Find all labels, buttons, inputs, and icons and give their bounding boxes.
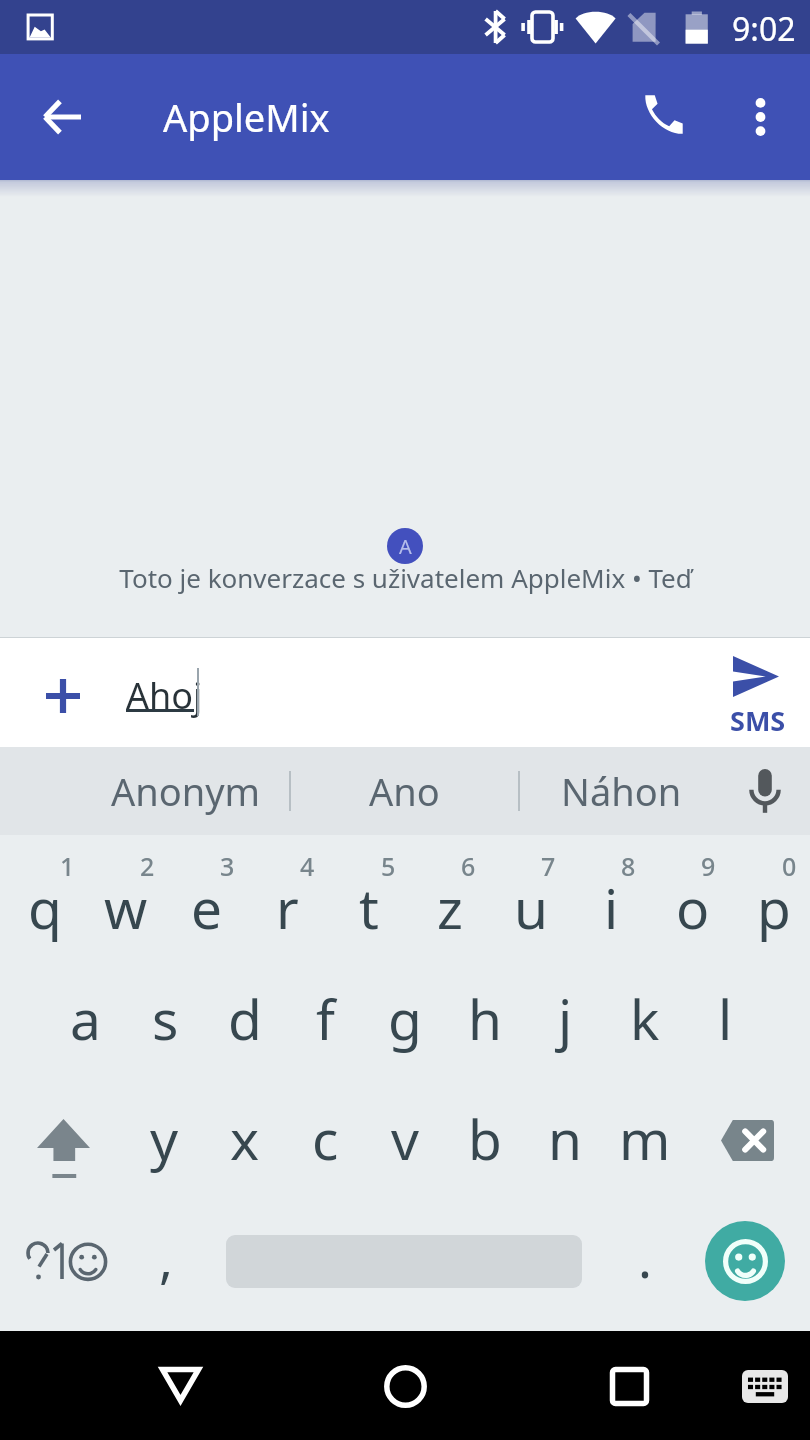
- staticText: Ano: [369, 765, 440, 817]
- staticText: 6: [461, 849, 476, 883]
- button[interactable]: g: [365, 955, 445, 1075]
- button[interactable]: Back: [135, 1341, 225, 1431]
- staticText: g: [388, 981, 422, 1056]
- staticText: j: [558, 981, 573, 1056]
- staticText: 9: [701, 849, 716, 883]
- button[interactable]: j: [525, 955, 605, 1075]
- staticText: p: [757, 870, 791, 945]
- button[interactable]: .: [582, 1195, 680, 1331]
- staticText: x: [230, 1101, 260, 1176]
- button[interactable]: Back: [23, 77, 103, 157]
- staticText: t: [359, 870, 379, 945]
- button[interactable]: c: [285, 1075, 365, 1195]
- button[interactable]: Ano: [290, 747, 518, 835]
- staticText: l: [718, 981, 733, 1056]
- button[interactable]: Náhon: [518, 747, 724, 835]
- button[interactable]: Shift: [0, 1075, 124, 1195]
- staticText: 7: [541, 849, 556, 883]
- staticText: k: [630, 981, 660, 1056]
- button[interactable]: Voice input: [724, 747, 810, 835]
- staticText: Ahoj: [126, 671, 203, 720]
- button[interactable]: k: [605, 955, 685, 1075]
- staticText: r: [276, 870, 299, 945]
- button[interactable]: f: [285, 955, 365, 1075]
- staticText: 8: [621, 849, 636, 883]
- button[interactable]: b: [445, 1075, 525, 1195]
- staticText: s: [152, 981, 179, 1056]
- staticText: b: [468, 1101, 502, 1176]
- staticText: m: [619, 1101, 671, 1176]
- button[interactable]: y: [124, 1075, 205, 1195]
- staticText: SMS: [730, 702, 786, 739]
- staticText: 5: [381, 849, 396, 883]
- button[interactable]: q: [0, 835, 81, 955]
- button[interactable]: e: [162, 835, 243, 955]
- staticText: 1: [60, 849, 75, 883]
- staticText: u: [514, 870, 548, 945]
- button[interactable]: Anonym: [81, 747, 290, 835]
- button[interactable]: ,: [128, 1195, 226, 1331]
- button[interactable]: i: [567, 835, 648, 955]
- staticText: AppleMix: [163, 91, 330, 143]
- staticText: d: [228, 981, 262, 1056]
- staticText: o: [676, 870, 710, 945]
- button[interactable]: r: [243, 835, 324, 955]
- staticText: 3: [220, 849, 235, 883]
- staticText: y: [150, 1101, 179, 1176]
- staticText: n: [548, 1101, 582, 1176]
- button[interactable]: z: [405, 835, 486, 955]
- button[interactable]: d: [205, 955, 285, 1075]
- button[interactable]: u: [486, 835, 567, 955]
- staticText: A: [399, 533, 412, 560]
- button[interactable]: Switch keyboard: [720, 1341, 810, 1431]
- button[interactable]: Home: [360, 1341, 450, 1431]
- staticText: c: [312, 1101, 339, 1176]
- button[interactable]: x: [205, 1075, 285, 1195]
- button[interactable]: SMS: [706, 642, 806, 743]
- staticText: Anonym: [111, 765, 261, 817]
- staticText: q: [28, 870, 62, 945]
- button[interactable]: Emoji: [680, 1195, 810, 1331]
- staticText: 9:02: [732, 7, 796, 51]
- button[interactable]: Recents: [584, 1341, 674, 1431]
- staticText: e: [191, 870, 223, 945]
- button[interactable]: Backspace: [685, 1075, 810, 1195]
- button[interactable]: p: [729, 835, 810, 955]
- staticText: 4: [300, 849, 315, 883]
- staticText: v: [391, 1101, 419, 1176]
- button[interactable]: Call: [619, 71, 705, 157]
- button[interactable]: Attach: [28, 658, 98, 728]
- staticText: 0: [782, 849, 797, 883]
- button[interactable]: o: [648, 835, 729, 955]
- staticText: Toto je konverzace s uživatelem AppleMix…: [119, 560, 692, 595]
- button[interactable]: t: [324, 835, 405, 955]
- staticText: 2: [140, 849, 155, 883]
- button[interactable]: More options: [714, 74, 800, 160]
- button[interactable]: s: [125, 955, 205, 1075]
- staticText: h: [468, 981, 502, 1056]
- button[interactable]: h: [445, 955, 525, 1075]
- staticText: f: [316, 981, 335, 1056]
- staticText: i: [604, 870, 619, 945]
- staticText: .: [638, 1222, 652, 1293]
- staticText: ,: [159, 1222, 173, 1293]
- staticText: a: [70, 981, 101, 1056]
- button[interactable]: l: [685, 955, 765, 1075]
- button[interactable]: Space: [226, 1195, 582, 1331]
- button[interactable]: m: [605, 1075, 685, 1195]
- staticText: z: [437, 870, 463, 945]
- button[interactable]: n: [525, 1075, 605, 1195]
- button[interactable]: a: [45, 955, 125, 1075]
- staticText: Náhon: [561, 765, 682, 817]
- button[interactable]: [0, 1195, 128, 1331]
- button[interactable]: w: [81, 835, 162, 955]
- button[interactable]: v: [365, 1075, 445, 1195]
- staticText: w: [104, 870, 148, 945]
